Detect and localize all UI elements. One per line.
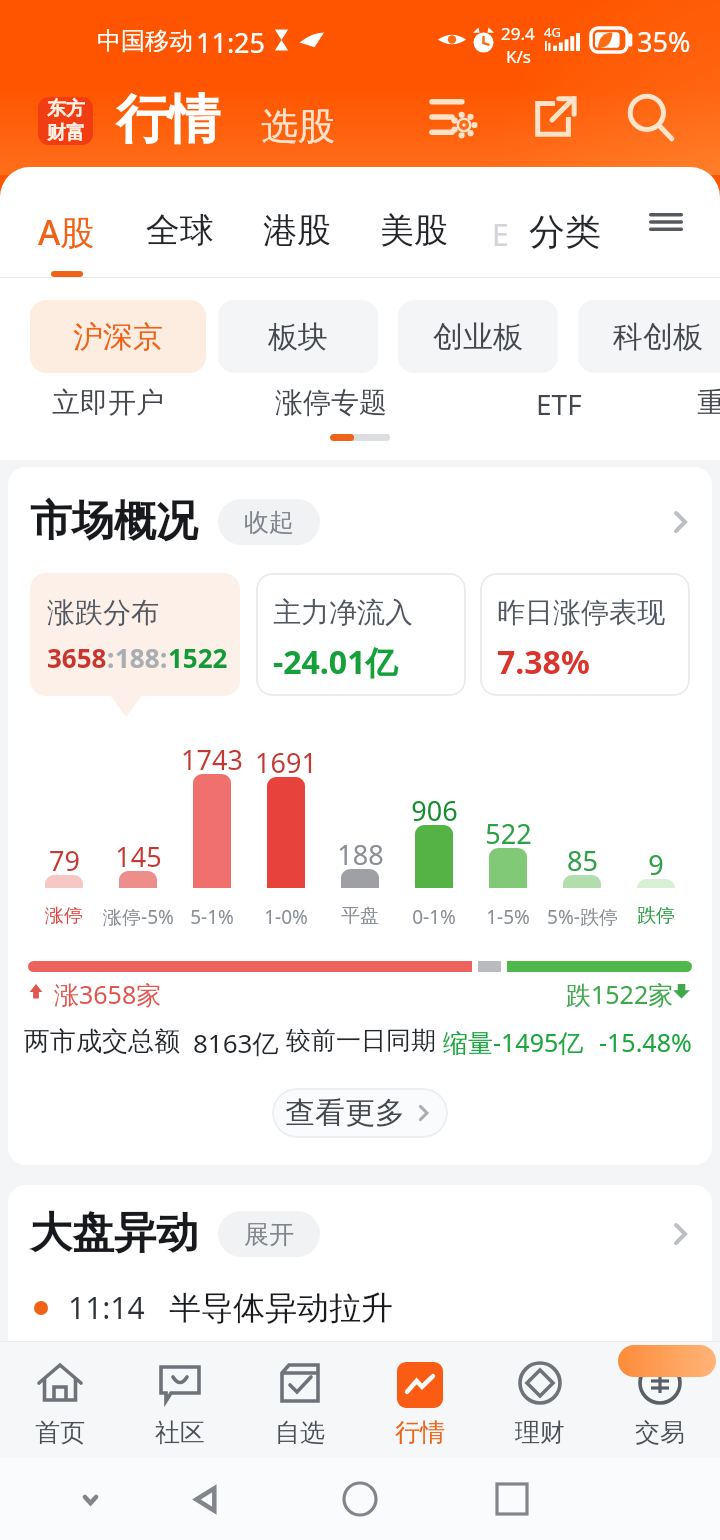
button[interactable]: 市场概况 — [30, 495, 696, 548]
button[interactable]: 昨日涨停表现 — [480, 573, 690, 696]
button[interactable]: 自选 — [240, 1341, 360, 1458]
staticText: 自选 — [275, 1417, 325, 1448]
staticText: 东方 — [47, 97, 85, 121]
button[interactable]: 行情 — [360, 1341, 480, 1458]
button[interactable]: 美股 — [380, 209, 448, 252]
button[interactable]: Search — [619, 86, 683, 150]
staticText: 涨停-5% — [103, 904, 174, 930]
staticText: 理财 — [515, 1417, 565, 1448]
staticText: 79 — [49, 842, 80, 879]
button[interactable]: 立即开户 — [52, 385, 164, 420]
button[interactable]: 展开 — [218, 1211, 320, 1257]
staticText: 1-0% — [264, 904, 308, 930]
button[interactable]: Hide keyboard — [50, 1458, 130, 1540]
staticText: 平盘 — [341, 904, 379, 928]
button[interactable]: 港股 — [263, 209, 331, 252]
staticText: A股 — [38, 209, 95, 255]
staticText: 1522 — [168, 640, 228, 675]
button[interactable]: 沪深京 — [30, 300, 206, 373]
button[interactable]: 主力净流入 — [256, 573, 466, 696]
button[interactable]: 涨停专题 — [275, 385, 387, 420]
button[interactable]: 收起 — [218, 499, 320, 545]
staticText: 涨3658家 — [54, 977, 162, 1011]
staticText: E — [492, 214, 509, 255]
staticText: 财富 — [47, 121, 85, 145]
button[interactable]: A股 — [38, 209, 95, 255]
staticText: 7.38% — [497, 640, 590, 684]
staticText: 主力净流入 — [273, 595, 413, 630]
staticText: 科创板 — [613, 318, 703, 356]
staticText: 较前一日同期 — [286, 1025, 436, 1056]
staticText: 首页 — [35, 1417, 85, 1448]
staticText: 市场概况 — [30, 495, 198, 548]
staticText: 收起 — [244, 507, 294, 538]
staticText: 涨停专题 — [275, 385, 387, 420]
button[interactable]: 分类 — [529, 209, 601, 254]
button[interactable]: 涨跌分布 — [30, 573, 240, 696]
button[interactable]: 社区 — [120, 1341, 240, 1458]
staticText: 1-5% — [486, 904, 530, 930]
staticText: 1691 — [255, 744, 317, 781]
staticText: 0-1% — [412, 904, 456, 930]
staticText: 分类 — [529, 209, 601, 254]
staticText: 跌停 — [637, 904, 675, 928]
button[interactable]: 交易 — [600, 1341, 720, 1458]
button[interactable]: 科创板 — [578, 300, 720, 373]
button[interactable]: 大盘异动 — [30, 1207, 696, 1260]
staticText: 906 — [411, 792, 458, 829]
button[interactable]: 理财 — [480, 1341, 600, 1458]
button[interactable]: 11:14 — [34, 1287, 712, 1328]
staticText: 85 — [567, 842, 598, 879]
staticText: 大盘异动 — [30, 1207, 198, 1260]
staticText: 522 — [485, 815, 532, 852]
staticText: 沪深京 — [73, 318, 163, 356]
button[interactable]: 全球 — [146, 209, 214, 252]
staticText: 5%-跌停 — [547, 904, 618, 930]
staticText: 创业板 — [433, 318, 523, 356]
staticText: 缩量-1495亿 — [443, 1025, 584, 1059]
button[interactable]: 选股 — [261, 103, 335, 150]
button[interactable]: 东方 — [38, 97, 93, 145]
button[interactable]: Recents — [472, 1458, 552, 1540]
staticText: 半导体异动拉升 — [169, 1288, 393, 1328]
staticText: 港股 — [263, 209, 331, 252]
staticText: 1743 — [181, 741, 243, 778]
staticText: 涨停 — [45, 904, 83, 928]
staticText: 查看更多 — [285, 1094, 405, 1132]
staticText: 跌1522家 — [566, 977, 674, 1011]
staticText: 昨日涨停表现 — [497, 595, 665, 630]
button[interactable]: 行情 — [116, 87, 220, 153]
staticText: 展开 — [244, 1219, 294, 1250]
staticText: 11:14 — [68, 1287, 145, 1328]
staticText: 5-1% — [190, 904, 234, 930]
staticText: 3658 — [47, 640, 107, 675]
staticText: 188 — [337, 836, 384, 873]
staticText: 板块 — [268, 318, 328, 356]
staticText: 188 — [115, 640, 160, 675]
staticText: -15.48% — [599, 1025, 692, 1059]
button[interactable]: 板块 — [218, 300, 378, 373]
staticText: 两市成交总额 — [24, 1025, 180, 1058]
button[interactable]: 创业板 — [398, 300, 558, 373]
staticText: ETF — [536, 385, 582, 423]
button[interactable]: 重 — [697, 385, 720, 420]
button[interactable]: Share — [522, 86, 586, 150]
staticText: 8163亿 — [193, 1025, 279, 1061]
button[interactable]: 首页 — [0, 1341, 120, 1458]
button[interactable]: Home — [320, 1458, 400, 1540]
button[interactable]: 查看更多 — [272, 1088, 448, 1138]
staticText: 9 — [648, 846, 664, 883]
button[interactable]: Filter settings — [424, 85, 488, 149]
staticText: 全球 — [146, 209, 214, 252]
staticText: 11:25 — [196, 24, 266, 61]
staticText: 29.4 — [501, 22, 535, 45]
staticText: 立即开户 — [52, 385, 164, 420]
button[interactable]: Back — [166, 1458, 246, 1540]
staticText: 选股 — [261, 103, 335, 150]
staticText: : — [160, 640, 168, 675]
staticText: 行情 — [395, 1417, 445, 1448]
button[interactable]: ETF — [536, 385, 582, 423]
staticText: 4G — [544, 23, 561, 41]
staticText: -24.01亿 — [273, 640, 398, 684]
button[interactable]: More tabs — [639, 195, 693, 249]
